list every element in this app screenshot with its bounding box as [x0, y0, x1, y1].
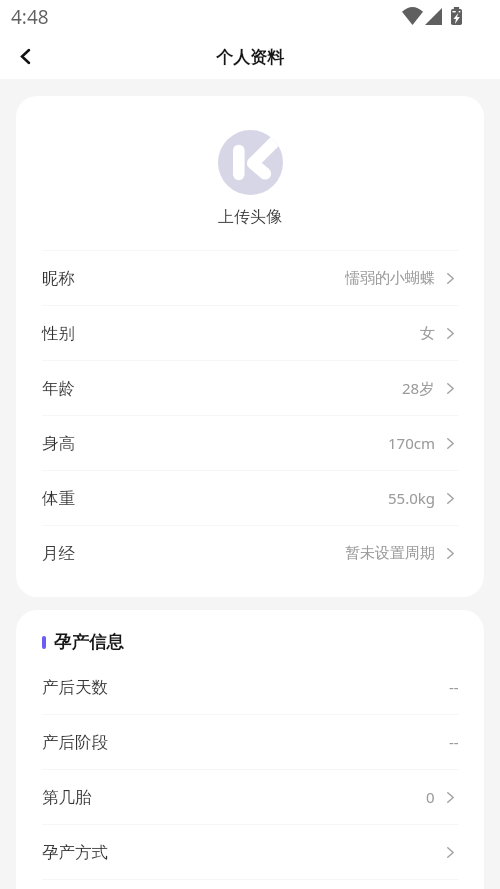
staticText: 昵称	[42, 268, 75, 289]
staticText: 体重	[42, 488, 75, 509]
staticText: 孕产方式	[42, 842, 108, 863]
button[interactable]: 第几胎	[16, 770, 484, 824]
button[interactable]: 身高	[16, 416, 484, 470]
staticText: 产后天数	[42, 677, 108, 698]
staticText: --	[449, 677, 459, 697]
staticText: 年龄	[42, 378, 75, 399]
staticText: 0	[426, 787, 435, 807]
button[interactable]: 产后阶段	[16, 715, 484, 769]
staticText: 4:48	[11, 4, 49, 30]
staticText: 第几胎	[42, 787, 92, 808]
button[interactable]: Back	[0, 35, 50, 79]
staticText: 性别	[42, 323, 75, 344]
button[interactable]: 性别	[16, 306, 484, 360]
staticText: 身高	[42, 433, 75, 454]
button[interactable]: 上传头像	[16, 96, 484, 250]
staticText: 28岁	[402, 378, 435, 398]
staticText: 孕产信息	[54, 631, 124, 653]
staticText: 月经	[42, 543, 75, 564]
staticText: 懦弱的小蝴蝶	[345, 269, 435, 288]
staticText: 上传头像	[218, 207, 282, 227]
staticText: 个人资料	[216, 47, 284, 68]
staticText: --	[449, 732, 459, 752]
button[interactable]: 月经	[16, 526, 484, 580]
staticText: 产后阶段	[42, 732, 108, 753]
staticText: 55.0kg	[388, 488, 435, 508]
staticText: 170cm	[388, 433, 435, 453]
button[interactable]: 产后天数	[16, 660, 484, 714]
staticText: 女	[420, 324, 435, 343]
button[interactable]: 体重	[16, 471, 484, 525]
button[interactable]: 孕产方式	[16, 825, 484, 879]
staticText: 暂未设置周期	[345, 544, 435, 563]
button[interactable]: 昵称	[16, 251, 484, 305]
button[interactable]: 年龄	[16, 361, 484, 415]
